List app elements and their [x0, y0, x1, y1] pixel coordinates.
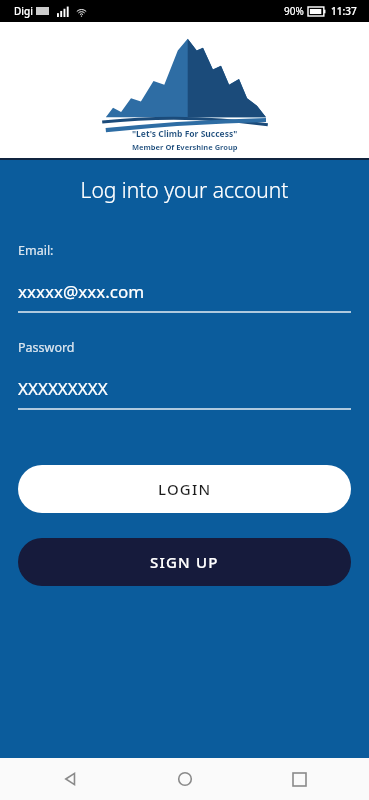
- button[interactable]: Home: [167, 761, 203, 797]
- button[interactable]: LOGIN: [18, 465, 351, 513]
- staticText: 90%: [284, 4, 304, 18]
- staticText: Log into your account: [0, 176, 369, 205]
- staticText: SIGN UP: [150, 552, 219, 572]
- staticText: "Let's Climb For Success": [132, 128, 238, 140]
- staticText: Email:: [18, 242, 54, 259]
- staticText: xxxxx@xxx.com: [18, 280, 145, 303]
- button[interactable]: SIGN UP: [18, 538, 351, 586]
- staticText: A: [186, 87, 194, 99]
- button[interactable]: Recent apps: [281, 761, 317, 797]
- staticText: Member Of Evershine Group: [132, 142, 238, 152]
- staticText: LOGIN: [158, 479, 212, 499]
- staticText: N: [184, 87, 192, 98]
- staticText: A: [182, 87, 188, 98]
- staticText: Password: [18, 339, 75, 356]
- button[interactable]: Back: [52, 761, 88, 797]
- staticText: XXXXXXXXX: [18, 377, 108, 400]
- staticText: Digi: [14, 4, 33, 18]
- staticText: 11:37: [331, 4, 357, 18]
